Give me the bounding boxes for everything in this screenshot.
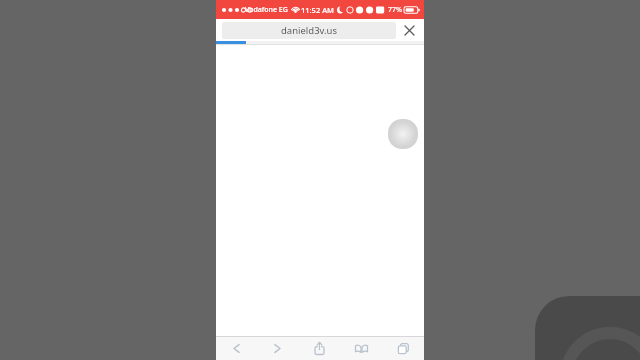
staticText: danield3v.us bbox=[281, 24, 337, 37]
button[interactable]: Back bbox=[216, 337, 257, 360]
button[interactable]: danield3v.us bbox=[222, 22, 396, 39]
staticText: 11:52 AM bbox=[301, 5, 334, 15]
button[interactable]: Bookmarks bbox=[340, 337, 382, 360]
button[interactable]: Tabs bbox=[382, 337, 424, 360]
button[interactable]: Close tab bbox=[398, 19, 420, 41]
button[interactable]: Share bbox=[298, 337, 340, 360]
staticText: Vodafone EG bbox=[245, 5, 288, 15]
button[interactable]: Forward bbox=[257, 337, 298, 360]
staticText: 77% bbox=[388, 5, 402, 15]
